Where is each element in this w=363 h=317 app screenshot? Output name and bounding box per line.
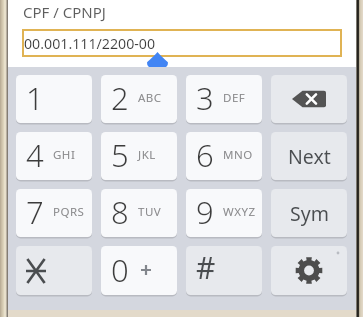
staticText: 8: [111, 191, 129, 233]
staticText: 0: [111, 249, 129, 291]
staticText: ABC: [138, 90, 162, 106]
button[interactable]: 9: [186, 189, 262, 237]
staticText: 6: [196, 134, 214, 176]
button[interactable]: 8: [101, 189, 177, 237]
staticText: CPF / CPNPJ: [23, 2, 106, 22]
staticText: MNO: [223, 147, 253, 163]
button[interactable]: 00.001.111/2200-00: [22, 29, 342, 57]
staticText: #: [196, 247, 216, 288]
staticText: 4: [26, 134, 44, 176]
staticText: GHI: [53, 147, 76, 163]
button[interactable]: Hash: [186, 246, 262, 295]
button[interactable]: Asterisk: [16, 246, 92, 295]
button[interactable]: 2: [101, 75, 177, 123]
staticText: 3: [196, 77, 214, 119]
staticText: 2: [111, 77, 129, 119]
staticText: Sym: [290, 200, 329, 227]
staticText: 1: [26, 77, 44, 119]
button[interactable]: Next: [271, 132, 347, 180]
button[interactable]: 3: [186, 75, 262, 123]
button[interactable]: Backspace: [271, 75, 347, 123]
button[interactable]: Zero plus: [101, 246, 177, 295]
staticText: TUV: [138, 204, 162, 220]
staticText: 5: [111, 134, 129, 176]
staticText: WXYZ: [223, 204, 256, 220]
button[interactable]: Settings: [271, 246, 347, 295]
staticText: PQRS: [53, 204, 85, 220]
staticText: 9: [196, 191, 214, 233]
button[interactable]: 6: [186, 132, 262, 180]
staticText: Next: [288, 143, 331, 170]
button[interactable]: 7: [16, 189, 92, 237]
staticText: 00.001.111/2200-00: [24, 34, 156, 53]
staticText: 7: [26, 191, 44, 233]
button[interactable]: Sym: [271, 189, 347, 237]
staticText: JKL: [138, 147, 156, 163]
button[interactable]: 1: [16, 75, 92, 123]
button[interactable]: 4: [16, 132, 92, 180]
staticText: DEF: [223, 90, 246, 106]
button[interactable]: 5: [101, 132, 177, 180]
